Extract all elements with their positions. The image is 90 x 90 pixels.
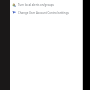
other: Security — [12, 11, 17, 16]
staticText: Change User Account Control settings — [18, 11, 69, 15]
other: Control Panel — [12, 3, 17, 8]
button[interactable]: Security — [10, 9, 82, 16]
staticText: Turn local alerts on/groups — [18, 3, 54, 7]
button[interactable]: Control Panel — [10, 1, 82, 8]
